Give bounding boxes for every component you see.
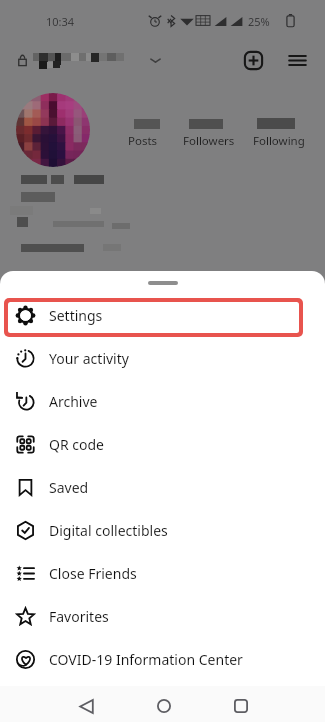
button[interactable]: Saved <box>0 466 325 509</box>
staticText: QR code <box>49 435 104 454</box>
staticText: Saved <box>49 478 89 497</box>
staticText: Digital collectibles <box>49 521 168 540</box>
button[interactable]: Back <box>72 692 100 720</box>
staticText: 25% <box>248 14 270 29</box>
button[interactable]: Close Friends <box>0 552 325 595</box>
button[interactable]: Digital collectibles <box>0 509 325 552</box>
staticText: Close Friends <box>49 564 137 583</box>
button[interactable]: Menu <box>288 51 307 70</box>
staticText: Posts <box>128 133 158 149</box>
staticText: Favorites <box>49 607 109 626</box>
button[interactable]: Home <box>150 692 178 720</box>
staticText: Settings <box>49 306 103 325</box>
staticText: Followers <box>183 133 235 149</box>
button[interactable]: QR code <box>0 423 325 466</box>
staticText: 10:34 <box>46 14 75 29</box>
button[interactable]: Favorites <box>0 595 325 638</box>
button[interactable]: Settings <box>0 294 325 337</box>
button[interactable]: COVID-19 Information Center <box>0 638 325 681</box>
button[interactable]: Archive <box>0 380 325 423</box>
staticText: Your activity <box>49 349 129 368</box>
button[interactable]: Your activity <box>0 337 325 380</box>
staticText: Following <box>253 133 305 149</box>
button[interactable]: Recents <box>227 692 255 720</box>
staticText: Archive <box>49 392 98 411</box>
staticText: COVID-19 Information Center <box>49 650 243 669</box>
button[interactable]: Create <box>243 50 264 71</box>
